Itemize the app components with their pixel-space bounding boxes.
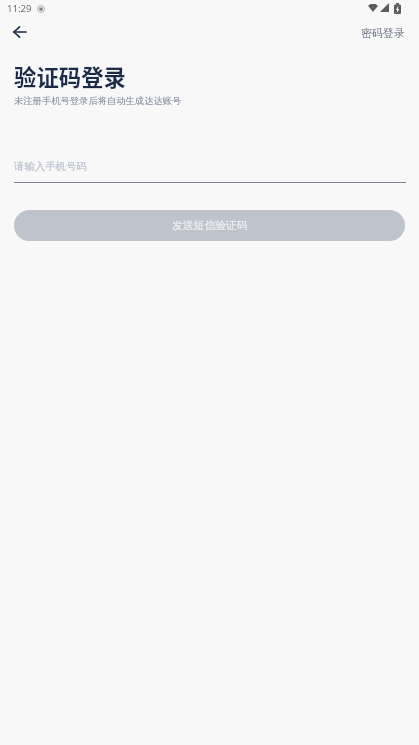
staticText: 验证码登录 [14, 60, 126, 92]
staticText: 未注册手机号登录后将自动生成达达账号 [14, 95, 182, 107]
button[interactable]: 发送短信验证码 [14, 210, 405, 241]
button[interactable]: 请输入手机号码 [14, 148, 406, 183]
staticText: 发送短信验证码 [172, 219, 248, 233]
staticText: 11:29 [7, 2, 32, 15]
button[interactable]: 密码登录 [355, 23, 411, 45]
staticText: 请输入手机号码 [14, 160, 87, 173]
staticText: 密码登录 [361, 27, 405, 41]
button[interactable]: Back [6, 18, 33, 45]
